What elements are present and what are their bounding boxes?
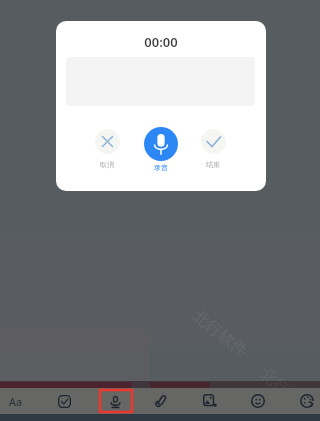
button[interactable]: Checklist [42,388,86,414]
button[interactable]: 录音 [137,127,185,179]
staticText: 取消 [100,160,114,169]
button[interactable]: Voice [93,388,137,414]
button[interactable]: 结束 [189,129,237,172]
staticText: 录音 [154,163,168,172]
staticText: 结束 [206,160,220,169]
staticText: 北行软件 [256,364,318,419]
button[interactable]: Palette [285,388,320,414]
staticText: 00:00 [56,33,266,51]
button[interactable]: Emoji [236,388,280,414]
button[interactable]: Image [188,388,232,414]
button[interactable]: Text style [0,388,38,414]
button[interactable]: 取消 [83,129,131,172]
staticText: Aa [9,394,23,409]
button[interactable]: Draw [139,388,183,414]
